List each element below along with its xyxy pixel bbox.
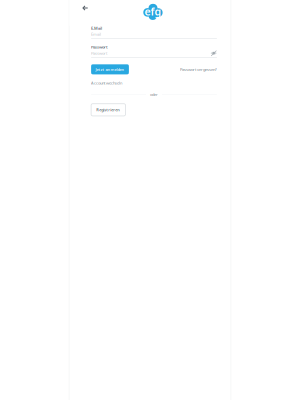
staticText: Registrieren: [96, 107, 120, 112]
staticText: oder: [150, 92, 158, 97]
button[interactable]: Registrieren: [91, 104, 125, 116]
staticText: Account wechseln: [91, 80, 122, 86]
staticText: Jetzt anmelden: [95, 67, 124, 72]
button[interactable]: Jetzt anmelden: [91, 64, 129, 74]
staticText: efg: [145, 4, 162, 19]
button[interactable]: Back: [69, 0, 96, 16]
staticText: Passwort vergessen?: [180, 67, 217, 72]
button[interactable]: Show password: [210, 50, 217, 56]
button[interactable]: Passwort vergessen?: [180, 67, 217, 72]
staticText: Email: [91, 32, 101, 37]
staticText: Passwort: [91, 44, 108, 50]
staticText: E-Mail: [91, 25, 102, 31]
button[interactable]: Account wechseln: [91, 80, 122, 86]
staticText: Passwort: [91, 50, 107, 56]
